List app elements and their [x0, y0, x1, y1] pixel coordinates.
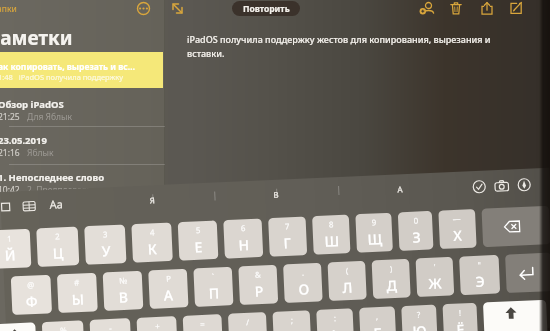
staticText: Ф	[25, 291, 38, 311]
staticText: Ы	[71, 289, 85, 309]
staticText: .	[302, 267, 305, 278]
button[interactable]: 0	[397, 211, 435, 251]
button[interactable]: Camera	[494, 178, 510, 194]
button[interactable]: №	[105, 271, 142, 311]
button[interactable]: Markup	[517, 177, 531, 192]
button[interactable]: =	[184, 314, 221, 331]
staticText: 1	[7, 232, 12, 244]
button[interactable]: Compose	[508, 0, 524, 16]
button[interactable]: ;	[274, 310, 311, 331]
button[interactable]: Share	[479, 0, 495, 16]
button[interactable]: Обзор iPadOS	[0, 97, 163, 129]
button[interactable]: P	[150, 269, 187, 309]
button[interactable]: Table	[21, 198, 37, 214]
button[interactable]: Add people	[419, 0, 435, 16]
staticText: 9	[371, 216, 377, 227]
button[interactable]: )	[372, 259, 410, 300]
staticText: 3	[103, 228, 108, 239]
button[interactable]: 5	[179, 220, 217, 261]
staticText: /	[246, 316, 249, 327]
button[interactable]: Я	[90, 189, 215, 209]
button[interactable]: —	[438, 209, 476, 250]
button[interactable]: 8	[312, 215, 350, 255]
staticText: -	[109, 322, 112, 331]
staticText: Э	[475, 272, 486, 291]
button[interactable]: @	[13, 275, 50, 315]
staticText: @	[27, 278, 35, 290]
staticText: Ё	[456, 320, 465, 331]
staticText: Ж	[428, 273, 443, 293]
staticText: Д	[386, 275, 398, 295]
button[interactable]: .	[284, 263, 322, 303]
staticText: П	[208, 283, 220, 303]
staticText: 21:25	[0, 111, 20, 123]
button[interactable]: :	[316, 308, 354, 331]
button[interactable]: 3	[87, 225, 124, 265]
button[interactable]: Повторить	[232, 1, 300, 16]
button[interactable]: ак копировать, вырезать и вс…	[0, 52, 163, 88]
staticText: %	[60, 324, 67, 331]
button[interactable]: 7	[268, 216, 306, 257]
button[interactable]: А	[338, 178, 462, 198]
staticText: 10:42	[0, 184, 20, 196]
staticText: 4	[150, 226, 155, 237]
button[interactable]: -	[92, 318, 129, 331]
button[interactable]: 23.05.2019	[0, 133, 163, 165]
staticText: :	[334, 312, 337, 323]
staticText: В	[273, 189, 280, 200]
staticText: Ш	[324, 231, 340, 251]
staticText: 2. Предпоследнее	[27, 184, 102, 196]
button[interactable]: 1	[0, 229, 28, 269]
staticText: А	[397, 183, 403, 194]
staticText: +	[155, 320, 160, 331]
button[interactable]: &	[239, 265, 277, 305]
button[interactable]: 2	[39, 227, 76, 267]
staticText: Заметки	[0, 25, 73, 51]
button[interactable]: Aa	[49, 196, 64, 212]
button[interactable]: /	[229, 312, 266, 331]
staticText: У	[101, 241, 111, 261]
button[interactable]: ?	[400, 305, 438, 331]
staticText: Г	[283, 233, 292, 252]
button[interactable]: `	[195, 267, 232, 307]
button[interactable]: ,	[358, 307, 396, 331]
button[interactable]: +	[139, 316, 176, 331]
button[interactable]: More options	[135, 0, 152, 17]
button[interactable]: !	[441, 303, 479, 331]
button[interactable]: 1. Непоследнее слово	[0, 170, 163, 202]
button[interactable]: Expand	[169, 0, 186, 17]
button[interactable]: %	[45, 320, 82, 331]
staticText: ак копировать, вырезать и вс…	[0, 61, 136, 73]
button[interactable]: Checklist	[472, 179, 486, 194]
staticText: З	[412, 227, 422, 247]
staticText: iPadOS получила поддержку жестов для коп…	[187, 33, 491, 45]
staticText: ,	[376, 310, 379, 321]
button[interactable]: 6	[224, 218, 262, 259]
button[interactable]: #	[59, 273, 96, 313]
button[interactable]: (	[328, 261, 366, 301]
staticText: О	[298, 279, 310, 299]
button[interactable]: '	[416, 257, 454, 298]
staticText: Я	[149, 194, 156, 205]
staticText: 8	[328, 218, 334, 229]
staticText: Обзор iPadOS	[0, 98, 64, 111]
button[interactable]: Insert	[0, 199, 13, 214]
staticText: Б	[373, 323, 383, 331]
staticText: 6	[241, 222, 246, 233]
button[interactable]: 9	[355, 213, 393, 253]
staticText: —	[452, 213, 461, 224]
button[interactable]: "	[461, 255, 499, 296]
staticText: #	[74, 276, 80, 288]
staticText: Щ	[367, 229, 383, 249]
staticText: 21:16	[0, 147, 20, 159]
staticText: 7	[284, 220, 290, 231]
button[interactable]: Delete	[448, 0, 464, 16]
staticText: =	[200, 318, 205, 329]
staticText: Л	[342, 277, 353, 297]
staticText: Ц	[52, 243, 64, 263]
button[interactable]: В	[214, 184, 339, 203]
staticText: Х	[453, 226, 463, 245]
button[interactable]: 4	[134, 222, 171, 263]
